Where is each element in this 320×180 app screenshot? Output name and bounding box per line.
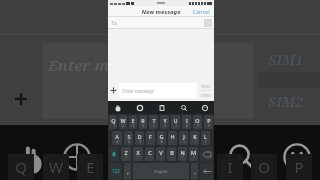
staticText: X (136, 149, 140, 156)
staticText: S (127, 133, 131, 140)
button[interactable]: O (193, 115, 202, 129)
button[interactable]: G (157, 131, 166, 145)
staticText: 6 (164, 124, 166, 128)
button[interactable]: Q (109, 115, 117, 129)
staticText: ? (193, 156, 195, 160)
button[interactable]: Z (121, 147, 131, 161)
button[interactable]: Shift (109, 147, 119, 161)
button[interactable]: Add recipient from contacts (204, 19, 212, 27)
staticText: ( (195, 140, 196, 144)
staticText: $ (139, 140, 141, 144)
button[interactable]: L (201, 131, 210, 145)
button[interactable]: B (167, 147, 176, 161)
staticText: 3 (132, 124, 134, 128)
staticText: T (156, 157, 165, 177)
button[interactable]: Search (179, 103, 188, 112)
staticText: Enter mes (48, 55, 125, 75)
staticText: ) (205, 140, 206, 144)
staticText: I (186, 117, 188, 124)
button[interactable]: T (149, 115, 158, 129)
staticText: E (86, 157, 95, 177)
staticText: D (137, 133, 142, 140)
staticText: English (154, 169, 168, 174)
button[interactable]: S (124, 131, 133, 145)
staticText: H (170, 133, 175, 140)
button[interactable]: , (124, 163, 131, 179)
button[interactable]: E (129, 115, 137, 129)
staticText: M (191, 149, 196, 156)
staticText: 5 (153, 124, 155, 128)
staticText: A (115, 133, 119, 140)
staticText: R (141, 117, 145, 124)
button[interactable]: J (179, 131, 188, 145)
button[interactable]: U (171, 115, 180, 129)
button[interactable]: English (133, 163, 189, 179)
staticText: SIM1 (268, 50, 303, 69)
button[interactable]: Emoji (200, 103, 209, 112)
button[interactable]: I (182, 115, 191, 129)
staticText: F (149, 133, 152, 140)
button[interactable]: P (204, 115, 213, 129)
staticText: Z (124, 149, 128, 156)
staticText: ! (182, 156, 183, 160)
staticText: C (148, 149, 152, 156)
button[interactable]: D (135, 131, 144, 145)
button[interactable]: Backspace (200, 147, 213, 161)
button[interactable]: X (133, 147, 143, 161)
staticText: Y (163, 117, 167, 124)
button[interactable]: N (178, 147, 187, 161)
button[interactable]: Enter message (119, 83, 197, 98)
button[interactable]: F (146, 131, 155, 145)
button[interactable]: Y (160, 115, 169, 129)
staticText: Cancel (192, 8, 210, 15)
staticText: G (159, 133, 164, 140)
button[interactable]: Clipboard (157, 103, 166, 112)
staticText: @ (116, 140, 119, 144)
staticText: Q (111, 117, 116, 124)
button[interactable]: H (168, 131, 177, 145)
staticText: 2 (122, 124, 124, 128)
button[interactable]: Settings (135, 103, 144, 112)
staticText: N (180, 149, 185, 156)
staticText: _ (150, 140, 152, 144)
button[interactable]: Add attachment (108, 80, 119, 101)
button[interactable]: Swype menu (113, 103, 122, 112)
button[interactable]: C (145, 147, 154, 161)
staticText: # (128, 140, 130, 144)
button[interactable]: Cancel (190, 7, 212, 16)
staticText: SIM1 (201, 84, 211, 89)
staticText: U (173, 117, 178, 124)
button[interactable]: . (191, 163, 198, 179)
button[interactable]: M (189, 147, 198, 161)
staticText: Q (15, 157, 27, 177)
staticText: J (183, 133, 185, 140)
staticText: L (204, 133, 207, 140)
staticText: 8 (186, 124, 188, 128)
button[interactable]: R (139, 115, 147, 129)
staticText: 7 (175, 124, 177, 128)
button[interactable]: V (156, 147, 165, 161)
staticText: SIM2 (268, 92, 303, 111)
staticText: " (137, 156, 139, 160)
staticText: W (120, 117, 126, 124)
staticText: ; (172, 156, 173, 160)
staticText: K (193, 133, 197, 140)
staticText: O (258, 157, 270, 177)
button[interactable]: Enter (200, 163, 213, 179)
button[interactable]: W (119, 115, 127, 129)
button[interactable]: A (112, 131, 122, 145)
staticText: New message (141, 8, 181, 16)
button[interactable]: SIM1 (197, 82, 214, 90)
button[interactable]: SIM2 (197, 91, 214, 99)
staticText: 1 (113, 124, 115, 128)
staticText: B (170, 149, 174, 156)
staticText: 0 (208, 124, 210, 128)
button[interactable]: K (190, 131, 199, 145)
staticText: O (195, 117, 200, 124)
staticText: 123 (112, 168, 120, 174)
button[interactable]: 123 (109, 163, 122, 179)
staticText: P (294, 157, 304, 177)
staticText: . (194, 168, 196, 175)
staticText: * (125, 156, 127, 160)
button[interactable]: To (108, 17, 214, 29)
